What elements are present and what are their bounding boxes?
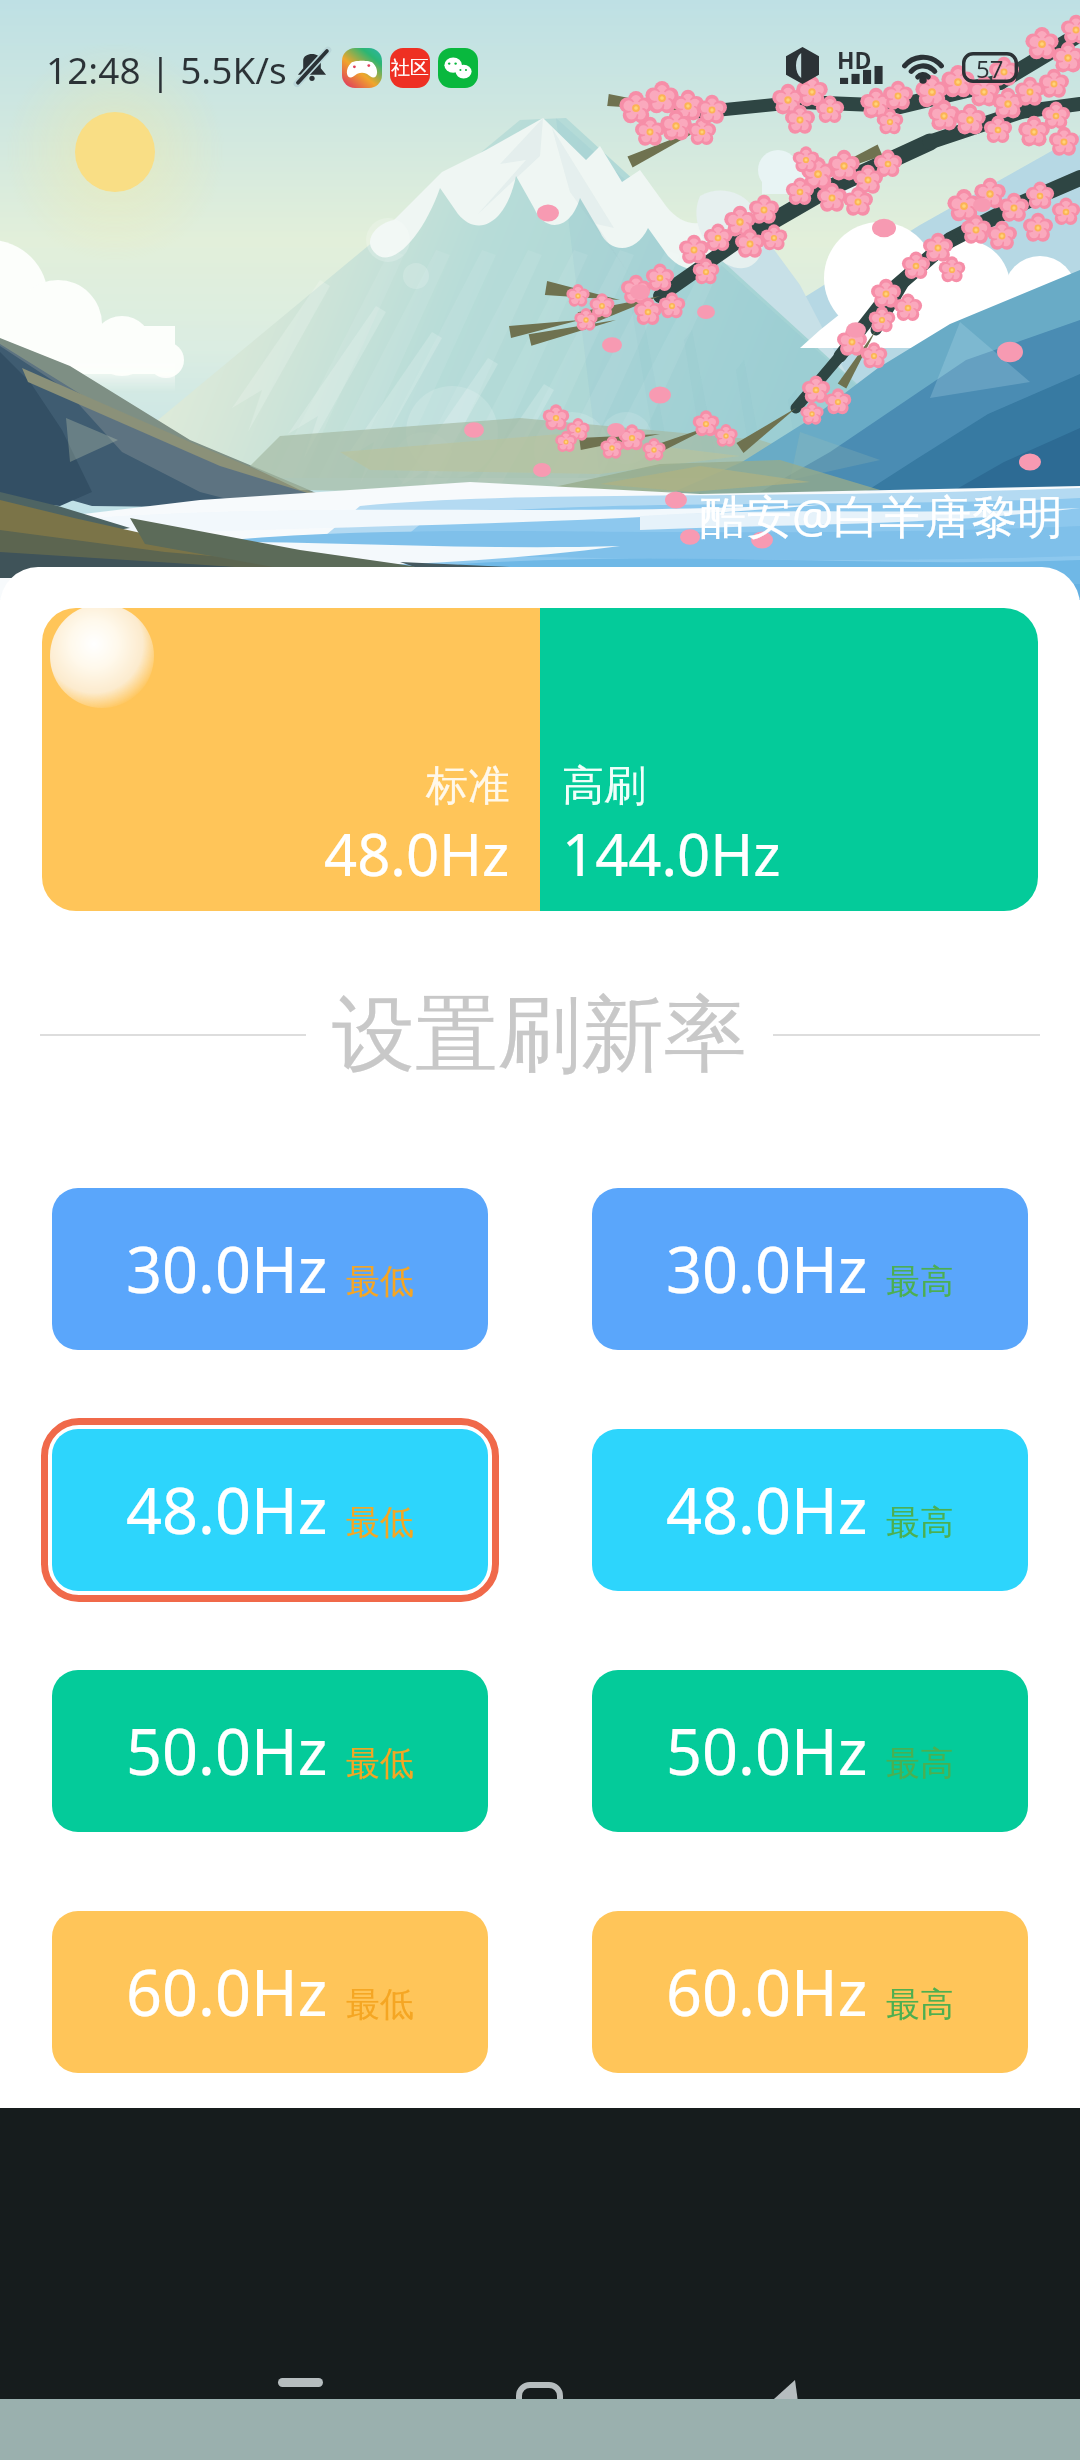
staticText: 12:48 | 5.5K/s (46, 44, 287, 94)
button[interactable]: 60.0Hz (592, 1911, 1028, 2073)
button[interactable]: 50.0Hz (52, 1670, 488, 1832)
button[interactable]: 标准 (42, 608, 540, 911)
staticText: 酷安@白羊唐黎明 (700, 484, 1064, 547)
staticText: HD (837, 44, 872, 75)
staticText: 社区 (391, 56, 429, 80)
staticText: 48.0Hz (126, 1467, 328, 1553)
staticText: 最低 (346, 1983, 414, 2026)
staticText: 最低 (346, 1260, 414, 1303)
staticText: 48.0Hz (666, 1467, 868, 1553)
staticText: 60.0Hz (666, 1949, 868, 2035)
staticText: 最高 (886, 1260, 954, 1303)
staticText: 最低 (346, 1501, 414, 1544)
button[interactable]: 高刷 (540, 608, 1038, 911)
staticText: 48.0Hz (324, 814, 510, 893)
staticText: 30.0Hz (666, 1226, 868, 1312)
staticText: 30.0Hz (126, 1226, 328, 1312)
staticText: 设置刷新率 (332, 983, 747, 1088)
staticText: 最高 (886, 1501, 954, 1544)
staticText: 最高 (886, 1742, 954, 1785)
staticText: 最低 (346, 1742, 414, 1785)
button[interactable]: 60.0Hz (52, 1911, 488, 2073)
staticText: 最高 (886, 1983, 954, 2026)
button[interactable]: Home (498, 2342, 582, 2408)
staticText: 57 (976, 52, 1004, 83)
staticText: 50.0Hz (126, 1708, 328, 1794)
button[interactable]: 30.0Hz (592, 1188, 1028, 1350)
button[interactable]: 30.0Hz (52, 1188, 488, 1350)
button[interactable]: 48.0Hz (52, 1429, 488, 1591)
staticText: 标准 (426, 760, 510, 813)
button[interactable]: Recent apps (258, 2342, 342, 2408)
button[interactable]: 48.0Hz (592, 1429, 1028, 1591)
staticText: 50.0Hz (666, 1708, 868, 1794)
button[interactable]: 50.0Hz (592, 1670, 1028, 1832)
staticText: 60.0Hz (126, 1949, 328, 2035)
button[interactable]: Back (740, 2342, 824, 2408)
staticText: 144.0Hz (562, 814, 781, 893)
staticText: 高刷 (562, 760, 646, 813)
